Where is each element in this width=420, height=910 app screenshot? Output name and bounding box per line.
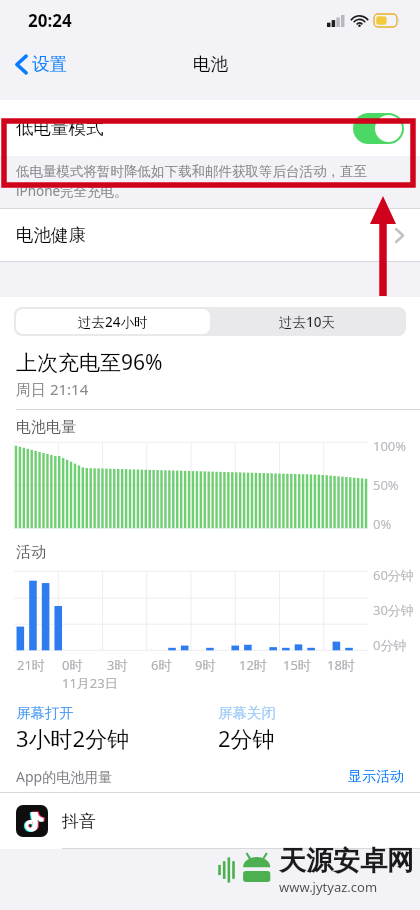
button[interactable]: 抖音 — [0, 793, 420, 849]
staticText: 活动 — [16, 543, 46, 562]
staticText: 2分钟 — [218, 723, 275, 753]
staticText: 21时 — [17, 656, 45, 674]
staticText: 电池电量 — [16, 418, 76, 437]
staticText: App的电池用量 — [16, 767, 113, 786]
staticText: 显示活动 — [348, 768, 404, 786]
button[interactable]: Low Power Mode toggle — [353, 113, 404, 144]
staticText: 30分钟 — [373, 601, 414, 619]
staticText: 低电量模式 — [16, 117, 104, 139]
staticText: 15时 — [283, 656, 311, 674]
staticText: 20:24 — [28, 9, 72, 32]
staticText: 3小时2分钟 — [16, 723, 130, 753]
button[interactable]: 过去10天 — [210, 309, 404, 334]
staticText: iPhone完全充电。 — [16, 182, 128, 200]
button[interactable]: 低电量模式 — [0, 100, 420, 156]
staticText: 电池健康 — [16, 224, 86, 246]
staticText: 低电量模式将暂时降低如下载和邮件获取等后台活动，直至 — [16, 163, 367, 180]
staticText: 过去10天 — [279, 313, 335, 331]
staticText: 抖音 — [62, 811, 96, 832]
staticText: www.jytyaz.com — [279, 878, 378, 896]
staticText: 6时 — [151, 656, 172, 674]
button[interactable]: 过去24小时 — [16, 309, 210, 334]
staticText: 屏幕打开 — [16, 704, 74, 722]
staticText: 周日 21:14 — [16, 379, 89, 399]
staticText: 电池 — [193, 53, 228, 75]
staticText: 天源安卓网 — [279, 844, 414, 878]
staticText: 0时 — [62, 656, 83, 674]
staticText: 11月23日 — [62, 674, 118, 692]
staticText: 3时 — [107, 656, 128, 674]
button[interactable]: 显示活动 — [348, 768, 404, 786]
staticText: 12时 — [239, 656, 267, 674]
button[interactable]: 电池健康 — [0, 209, 420, 261]
button[interactable]: 设置 — [10, 47, 73, 81]
staticText: 屏幕关闭 — [218, 704, 276, 722]
staticText: 设置 — [32, 53, 67, 75]
staticText: 过去24小时 — [78, 313, 148, 331]
staticText: 60分钟 — [373, 566, 414, 584]
staticText: 9时 — [195, 656, 216, 674]
staticText: 18时 — [327, 656, 355, 674]
staticText: 50% — [373, 476, 399, 494]
staticText: 上次充电至96% — [16, 348, 163, 377]
staticText: 0分钟 — [373, 636, 407, 654]
staticText: 0% — [373, 515, 392, 533]
staticText: 100% — [373, 437, 407, 455]
